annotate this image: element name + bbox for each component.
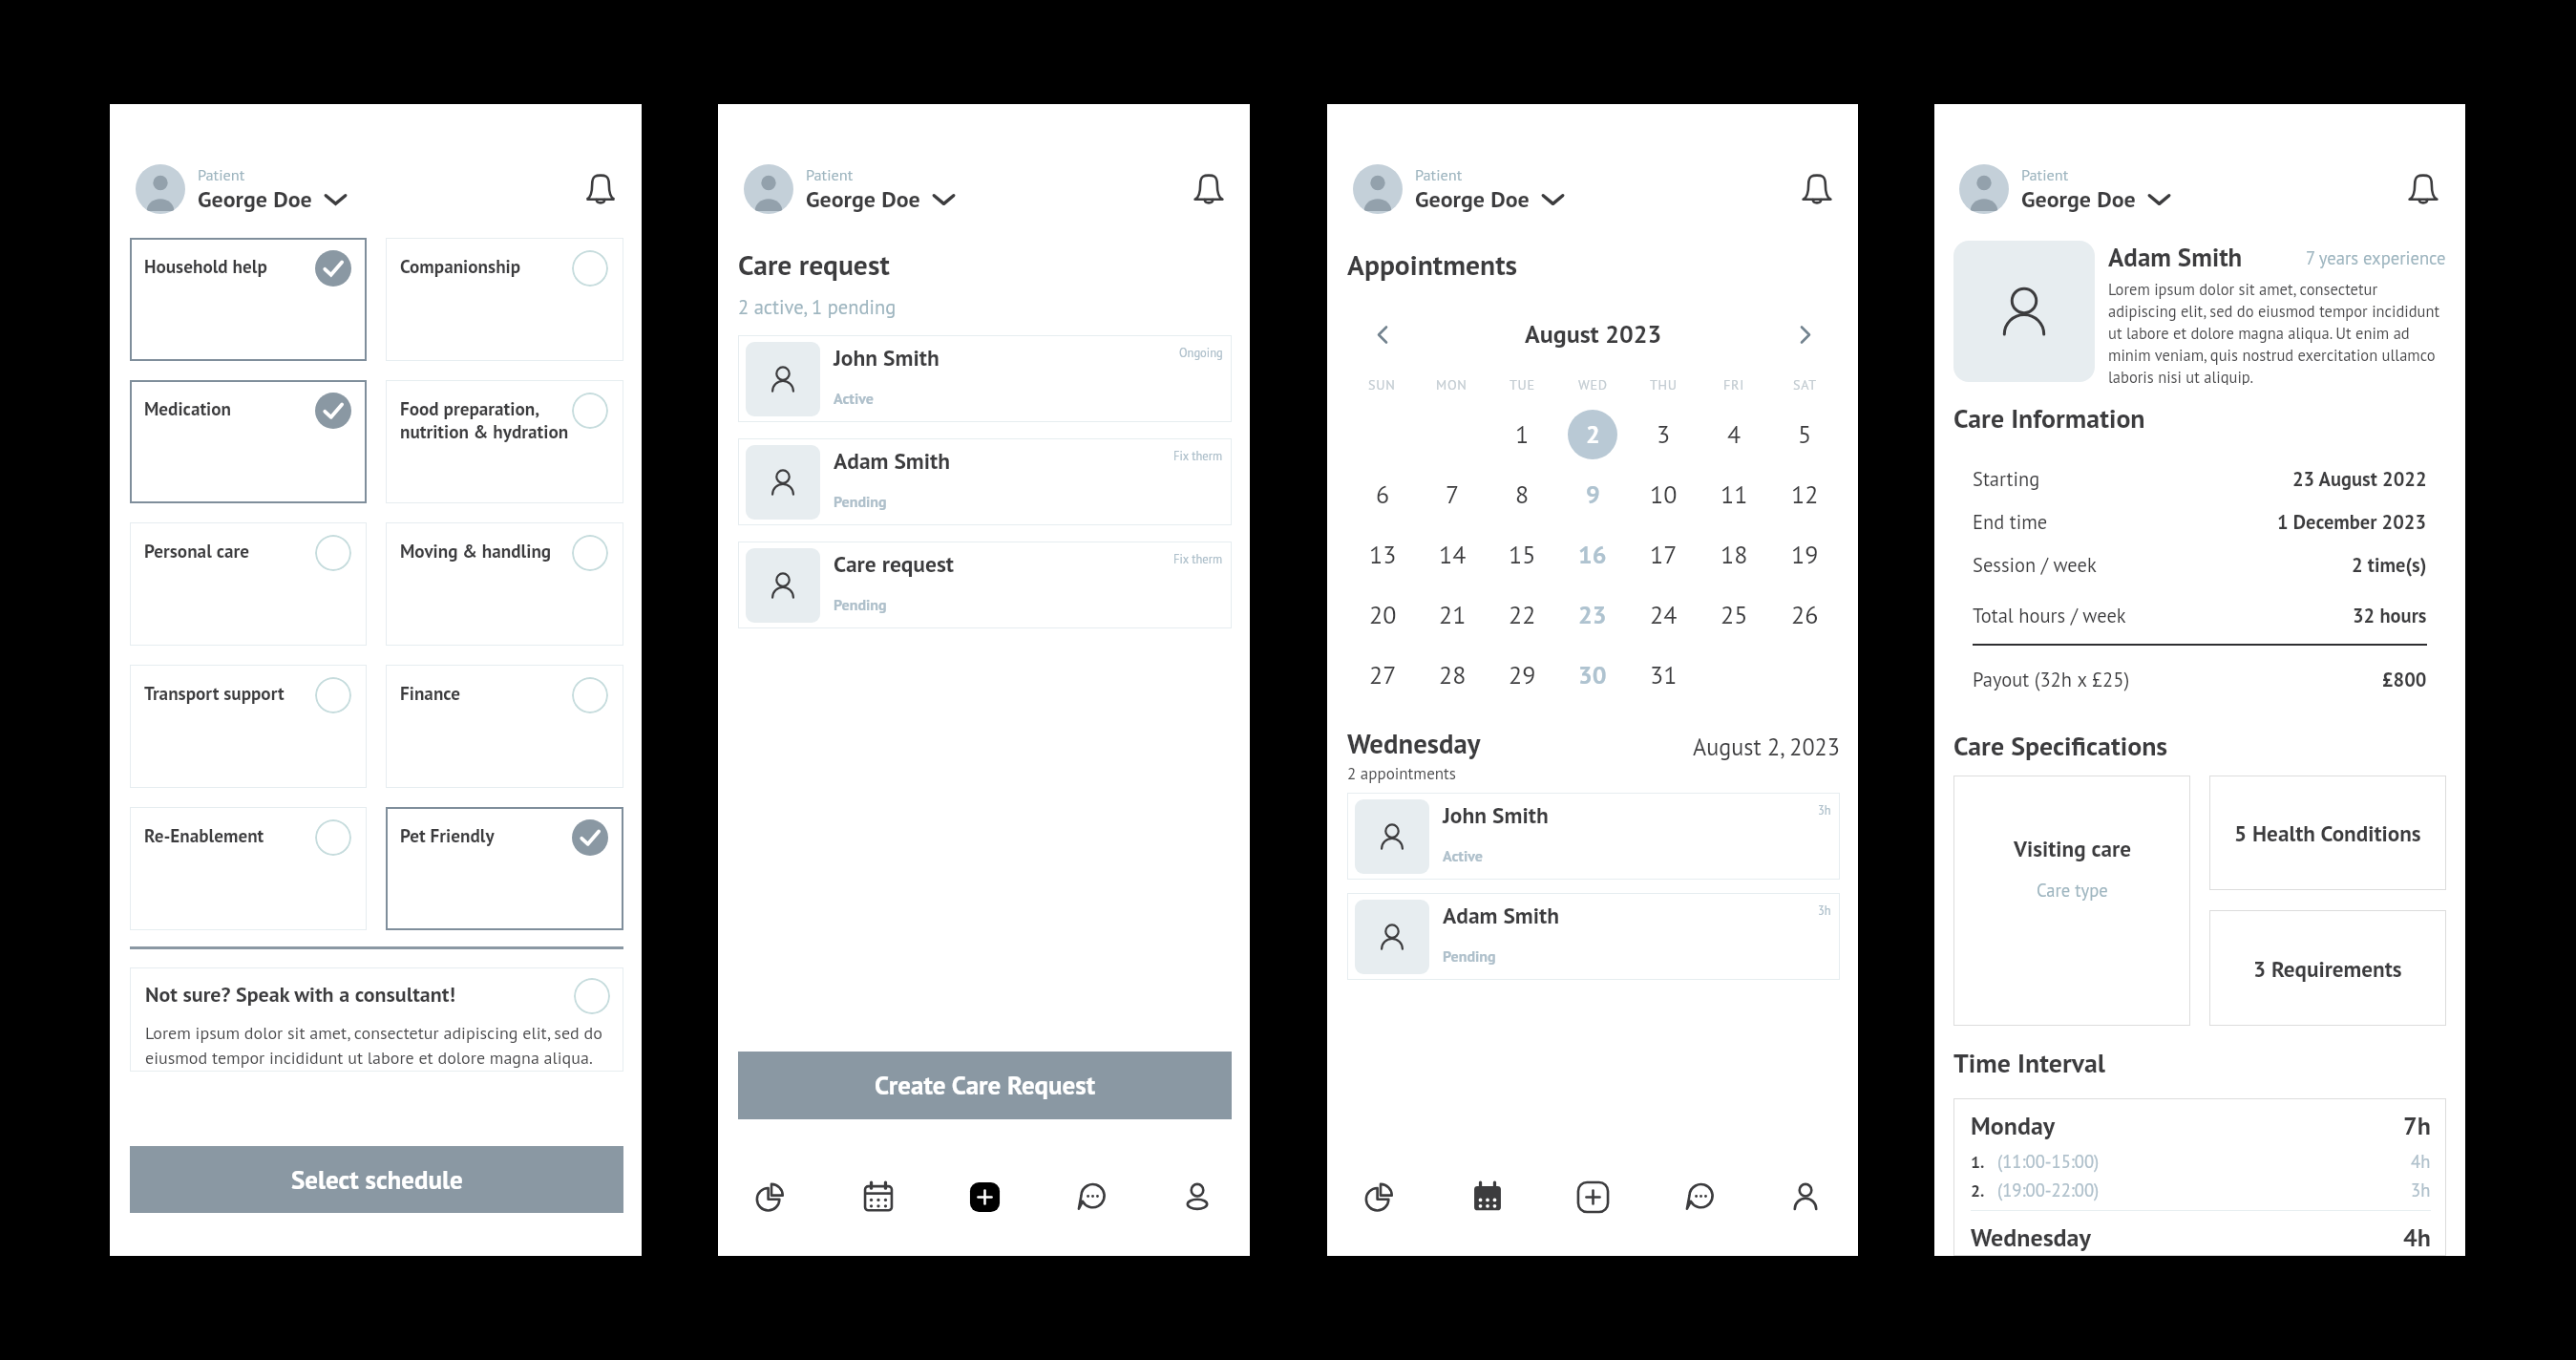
button[interactable]: 27 — [1358, 650, 1407, 700]
staticText: 3 — [1657, 418, 1671, 451]
button[interactable]: Care request — [738, 542, 1232, 628]
staticText: Total hours / week — [1973, 603, 2353, 628]
button[interactable]: 4 — [1709, 410, 1759, 459]
staticText: Care Information — [1953, 401, 2145, 436]
staticText: 23 — [1578, 599, 1607, 631]
button[interactable]: 21 — [1427, 590, 1477, 640]
button[interactable]: Select schedule — [130, 1146, 623, 1213]
staticText: 1 December 2023 — [2277, 509, 2427, 535]
staticText: TUE — [1510, 376, 1535, 393]
button[interactable]: Food preparation, nutrition & hydration — [386, 380, 623, 503]
button[interactable]: Adam Smith — [1347, 893, 1840, 980]
button[interactable]: Visiting care — [1953, 776, 2190, 1026]
button[interactable]: Calendar — [1434, 1170, 1540, 1223]
button[interactable]: Next month — [1769, 312, 1840, 356]
button[interactable]: 2 — [1568, 410, 1617, 459]
button[interactable]: 5 — [1780, 410, 1829, 459]
button[interactable]: Moving & handling — [386, 522, 623, 646]
button[interactable]: Transport support — [130, 665, 367, 788]
staticText: Starting — [1973, 466, 2292, 492]
button[interactable]: 16 — [1568, 530, 1617, 580]
button[interactable]: 30 — [1568, 650, 1617, 700]
button[interactable]: Notifications — [578, 166, 623, 212]
staticText: 3h — [1818, 802, 1831, 818]
button[interactable]: Not sure? Speak with a consultant! — [130, 967, 623, 1072]
button[interactable]: John Smith — [738, 335, 1232, 422]
staticText: Pending — [1443, 946, 1496, 967]
button[interactable]: 25 — [1709, 590, 1759, 640]
button[interactable]: 19 — [1780, 530, 1829, 580]
staticText: Time Interval — [1953, 1046, 2106, 1080]
button[interactable]: Household help — [130, 238, 367, 361]
button[interactable]: Patient — [1953, 161, 2400, 217]
button[interactable]: Calendar — [825, 1170, 932, 1223]
button[interactable]: Patient — [738, 161, 1186, 217]
button[interactable]: Previous month — [1347, 312, 1418, 356]
staticText: 26 — [1791, 599, 1819, 631]
button[interactable]: 3 — [1638, 410, 1688, 459]
button[interactable]: 13 — [1358, 530, 1407, 580]
button[interactable]: Create Care Request — [738, 1052, 1232, 1119]
button[interactable]: Messages — [1646, 1170, 1752, 1223]
button[interactable]: Medication — [130, 380, 367, 503]
button[interactable]: 26 — [1780, 590, 1829, 640]
staticText: Companionship — [400, 254, 521, 278]
staticText: Select schedule — [291, 1163, 463, 1197]
staticText: 13 — [1369, 539, 1397, 571]
button[interactable]: 3 Requirements — [2209, 910, 2446, 1026]
staticText: MON — [1436, 376, 1467, 393]
button[interactable]: Finance — [386, 665, 623, 788]
staticText: Payout (32h x £25) — [1973, 667, 2382, 692]
button[interactable]: 24 — [1638, 590, 1688, 640]
button[interactable]: Personal care — [130, 522, 367, 646]
button[interactable]: Notifications — [2400, 166, 2446, 212]
button[interactable]: Patient — [1347, 161, 1794, 217]
staticText: 23 August 2022 — [2292, 466, 2427, 492]
staticText: 31 — [1650, 659, 1678, 691]
button[interactable]: 14 — [1427, 530, 1477, 580]
button[interactable]: Dashboard — [718, 1170, 825, 1223]
button[interactable]: 23 — [1568, 590, 1617, 640]
button[interactable]: 10 — [1638, 470, 1688, 520]
button[interactable]: Profile — [1752, 1170, 1858, 1223]
button[interactable]: 11 — [1709, 470, 1759, 520]
staticText: Household help — [144, 254, 267, 278]
button[interactable]: John Smith — [1347, 793, 1840, 880]
staticText: Active — [1443, 846, 1483, 866]
staticText: 28 — [1439, 659, 1467, 691]
button[interactable]: Create — [1540, 1170, 1646, 1223]
staticText: 9 — [1586, 478, 1600, 511]
staticText: August 2, 2023 — [1693, 732, 1840, 761]
staticText: 29 — [1509, 659, 1536, 691]
button[interactable]: 29 — [1497, 650, 1547, 700]
button[interactable]: Patient — [130, 161, 578, 217]
staticText: Care request — [738, 246, 890, 283]
button[interactable]: 8 — [1497, 470, 1547, 520]
button[interactable]: 12 — [1780, 470, 1829, 520]
staticText: Not sure? Speak with a consultant! — [145, 981, 574, 1008]
button[interactable]: Notifications — [1794, 166, 1840, 212]
button[interactable]: 6 — [1358, 470, 1407, 520]
button[interactable]: Companionship — [386, 238, 623, 361]
button[interactable]: 7 — [1427, 470, 1477, 520]
staticText: Create Care Request — [875, 1069, 1096, 1102]
button[interactable]: 22 — [1497, 590, 1547, 640]
button[interactable]: 17 — [1638, 530, 1688, 580]
button[interactable]: 15 — [1497, 530, 1547, 580]
button[interactable]: Pet Friendly — [386, 807, 623, 930]
button[interactable]: 31 — [1638, 650, 1688, 700]
button[interactable]: 9 — [1568, 470, 1617, 520]
button[interactable]: 28 — [1427, 650, 1477, 700]
button[interactable]: Create — [932, 1170, 1038, 1223]
button[interactable]: 1 — [1497, 410, 1547, 459]
button[interactable]: 18 — [1709, 530, 1759, 580]
button[interactable]: 5 Health Conditions — [2209, 776, 2446, 890]
button[interactable]: Profile — [1144, 1170, 1250, 1223]
button[interactable]: Dashboard — [1327, 1170, 1434, 1223]
button[interactable]: Re-Enablement — [130, 807, 367, 930]
button[interactable]: Messages — [1038, 1170, 1144, 1223]
button[interactable]: Notifications — [1186, 166, 1232, 212]
button[interactable]: 20 — [1358, 590, 1407, 640]
staticText: 5 — [1798, 418, 1812, 451]
button[interactable]: Adam Smith — [738, 438, 1232, 525]
